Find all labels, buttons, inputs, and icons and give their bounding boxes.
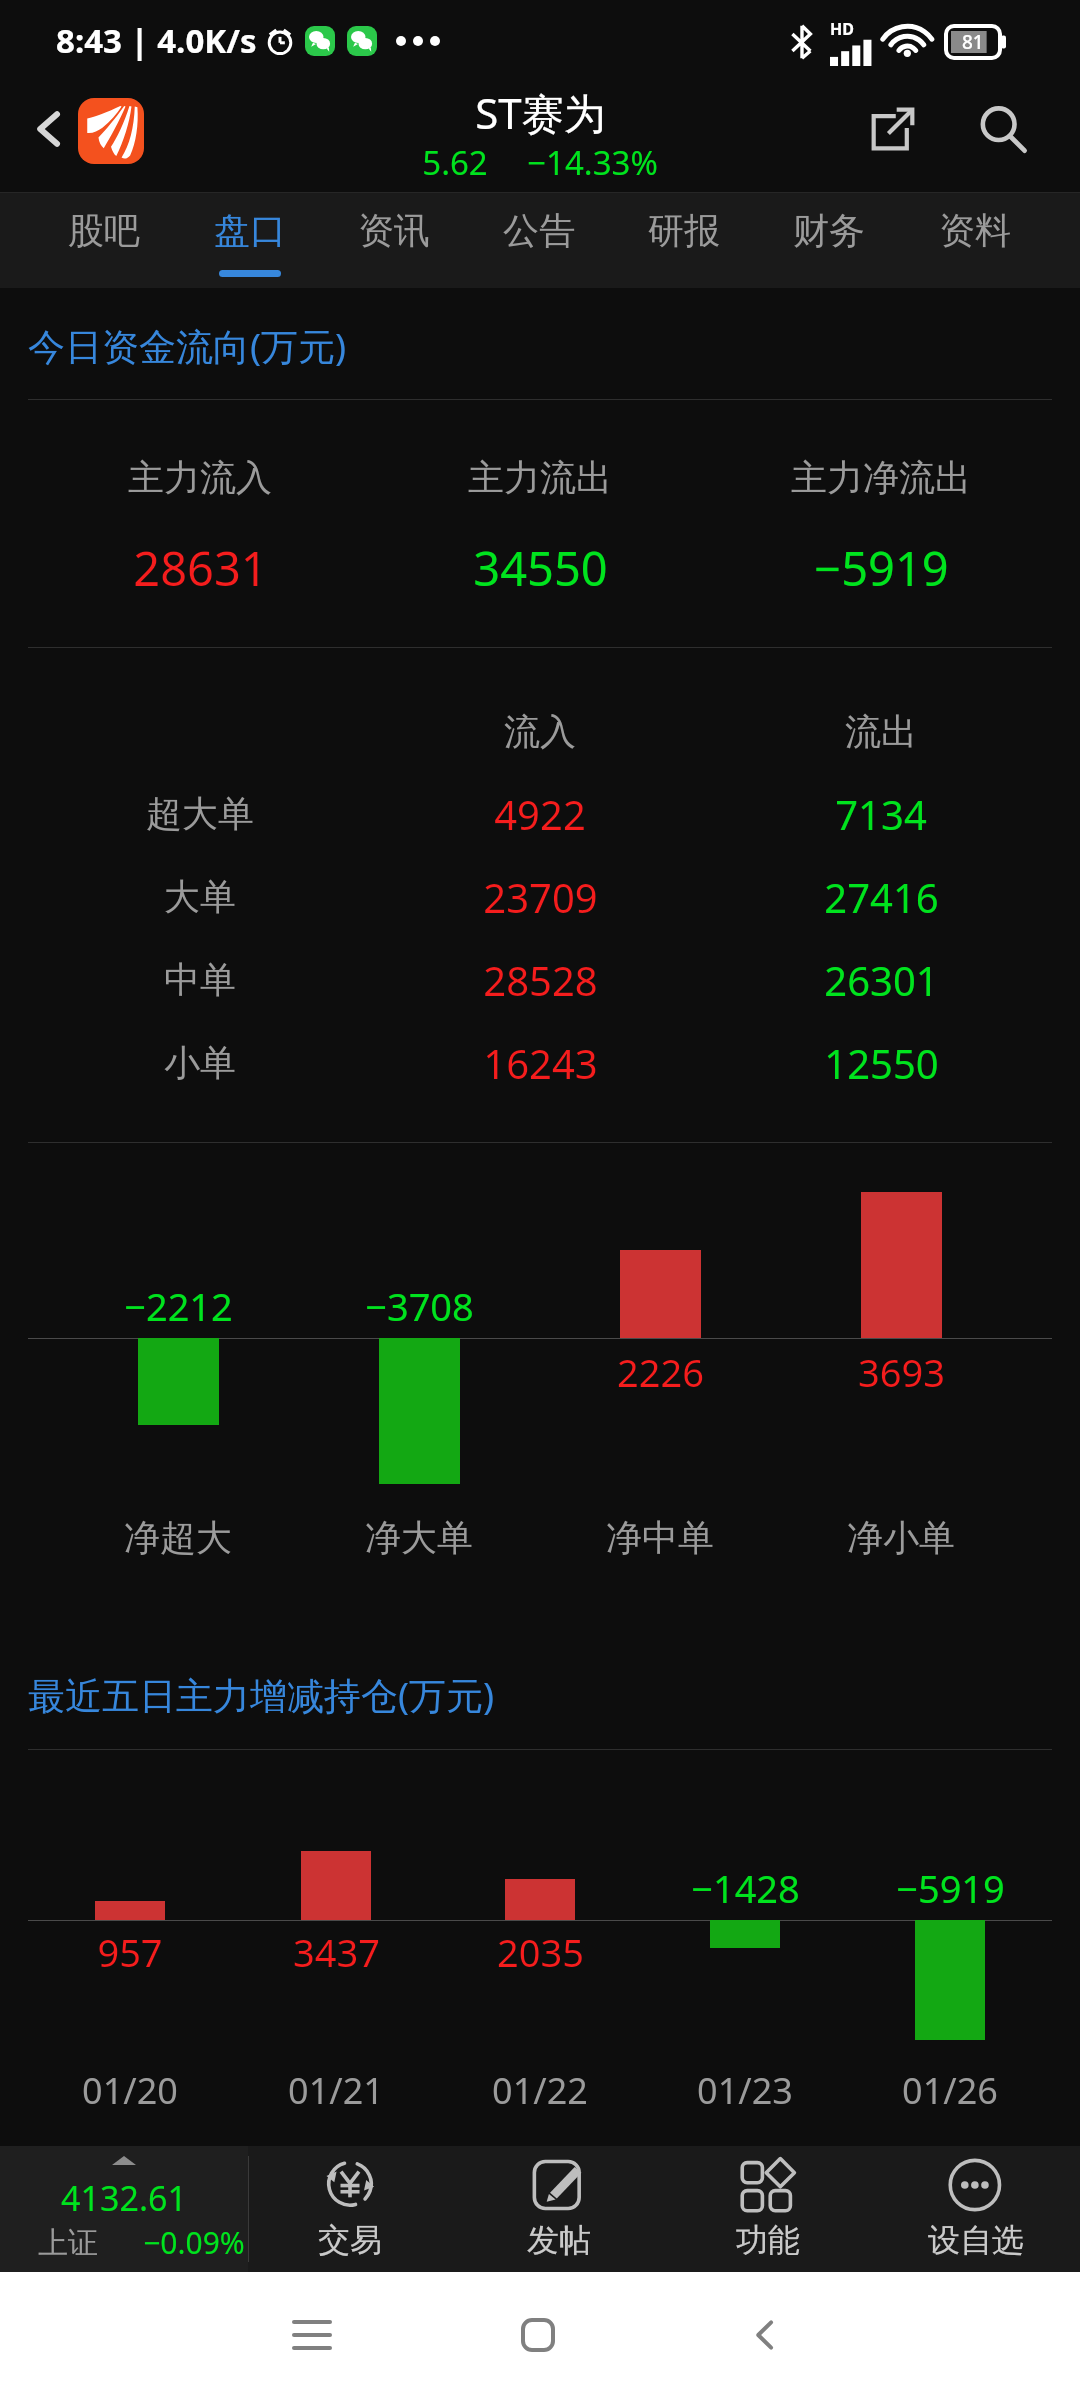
staticText: 功能 bbox=[736, 2220, 800, 2260]
button[interactable]: App logo bbox=[78, 98, 144, 164]
button[interactable]: 研报 bbox=[612, 192, 756, 288]
staticText: 26301 bbox=[824, 953, 939, 1007]
button[interactable]: Back bbox=[16, 96, 82, 162]
staticText: 28631 bbox=[133, 536, 268, 600]
staticText: 净小单 bbox=[847, 1515, 955, 1560]
staticText: −14.33% bbox=[527, 140, 658, 185]
staticText: 资讯 bbox=[358, 208, 430, 253]
button[interactable]: 最近五日主力增减持仓图 bbox=[28, 1770, 1052, 2120]
button[interactable] bbox=[246, 2146, 454, 2272]
button[interactable] bbox=[455, 2146, 663, 2272]
button[interactable] bbox=[370, 440, 710, 610]
staticText: −3708 bbox=[365, 1280, 474, 1332]
staticText: 中单 bbox=[164, 957, 236, 1002]
button[interactable] bbox=[664, 2146, 872, 2272]
staticText: 大单 bbox=[164, 874, 236, 919]
staticText: 流入 bbox=[504, 709, 576, 754]
staticText: 流出 bbox=[845, 709, 917, 754]
staticText: −5919 bbox=[814, 536, 949, 600]
staticText: 净超大 bbox=[124, 1515, 232, 1560]
staticText: 发帖 bbox=[527, 2220, 591, 2260]
staticText: 最近五日主力增减持仓(万元) bbox=[28, 1669, 495, 1720]
staticText: 主力流出 bbox=[468, 455, 612, 500]
staticText: 23709 bbox=[483, 870, 598, 924]
staticText: 资料 bbox=[939, 208, 1011, 253]
button[interactable]: Home bbox=[508, 2305, 568, 2365]
staticText: 01/23 bbox=[697, 2066, 793, 2115]
staticText: 2035 bbox=[497, 1926, 584, 1978]
staticText: HD bbox=[830, 18, 854, 40]
button[interactable]: Recents bbox=[282, 2305, 342, 2365]
staticText: 957 bbox=[97, 1926, 163, 1978]
button[interactable] bbox=[28, 772, 1052, 855]
staticText: 公告 bbox=[503, 208, 575, 253]
staticText: 财务 bbox=[793, 208, 865, 253]
button[interactable]: 资讯 bbox=[322, 192, 466, 288]
button[interactable]: 资料 bbox=[903, 192, 1047, 288]
button[interactable]: Share bbox=[858, 94, 928, 164]
staticText: 小单 bbox=[164, 1040, 236, 1085]
button[interactable]: 今日主力净流入分布图 bbox=[28, 1160, 1052, 1560]
button[interactable]: 公告 bbox=[467, 192, 611, 288]
staticText: −0.09% bbox=[143, 2222, 245, 2263]
staticText: 28528 bbox=[483, 953, 598, 1007]
button[interactable] bbox=[30, 440, 370, 610]
button[interactable] bbox=[28, 1021, 1052, 1104]
button[interactable]: 上证 index bbox=[0, 2146, 248, 2272]
button[interactable] bbox=[872, 2146, 1080, 2272]
button[interactable]: Search bbox=[968, 94, 1038, 164]
staticText: 34550 bbox=[473, 536, 608, 600]
button[interactable] bbox=[28, 855, 1052, 938]
button[interactable]: 盘口 bbox=[178, 192, 322, 288]
staticText: 4132.61 bbox=[61, 2175, 187, 2221]
staticText: 16243 bbox=[483, 1036, 598, 1090]
staticText: 3437 bbox=[293, 1926, 380, 1978]
staticText: 7134 bbox=[835, 787, 927, 841]
staticText: 2226 bbox=[617, 1346, 704, 1398]
staticText: 8:43 | 4.0K/s bbox=[56, 18, 257, 63]
staticText: 01/22 bbox=[492, 2066, 588, 2115]
button[interactable]: 股吧 bbox=[32, 192, 176, 288]
staticText: 今日资金流向(万元) bbox=[28, 320, 347, 371]
staticText: −2212 bbox=[124, 1280, 233, 1332]
staticText: 01/26 bbox=[902, 2066, 998, 2115]
button[interactable] bbox=[28, 938, 1052, 1021]
staticText: 盘口 bbox=[214, 208, 286, 253]
staticText: 股吧 bbox=[68, 208, 140, 253]
staticText: 12550 bbox=[824, 1036, 939, 1090]
staticText: 设自选 bbox=[928, 2220, 1024, 2260]
staticText: 4922 bbox=[494, 787, 586, 841]
staticText: 81 bbox=[962, 29, 984, 55]
staticText: 01/20 bbox=[82, 2066, 178, 2115]
staticText: 研报 bbox=[648, 208, 720, 253]
button[interactable]: 财务 bbox=[757, 192, 901, 288]
staticText: −5919 bbox=[896, 1862, 1005, 1914]
staticText: 净中单 bbox=[606, 1515, 714, 1560]
button[interactable] bbox=[711, 440, 1051, 610]
staticText: 交易 bbox=[318, 2220, 382, 2260]
staticText: −1428 bbox=[691, 1862, 800, 1914]
staticText: 3693 bbox=[858, 1346, 945, 1398]
staticText: 净大单 bbox=[365, 1515, 473, 1560]
button[interactable]: Back bbox=[735, 2305, 795, 2365]
staticText: 上证 bbox=[38, 2224, 98, 2262]
staticText: 主力净流出 bbox=[791, 455, 971, 500]
staticText: 主力流入 bbox=[128, 455, 272, 500]
staticText: 01/21 bbox=[288, 2066, 384, 2115]
staticText: 5.62 bbox=[422, 140, 488, 185]
staticText: ST赛为 bbox=[475, 84, 606, 141]
staticText: 27416 bbox=[824, 870, 939, 924]
staticText: 超大单 bbox=[146, 791, 254, 836]
